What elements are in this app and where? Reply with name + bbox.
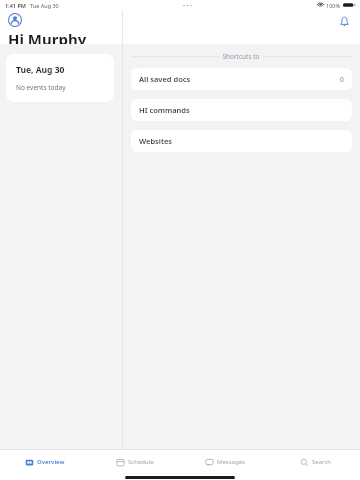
staticText: Tue, Aug 30 xyxy=(16,64,65,76)
button[interactable]: Notifications xyxy=(337,14,352,29)
button[interactable]: Profile xyxy=(8,13,22,27)
staticText: HI commands xyxy=(139,105,190,115)
staticText: 100% xyxy=(326,2,341,9)
staticText: Websites xyxy=(139,136,173,146)
staticText: Schedule xyxy=(128,458,154,466)
button[interactable]: Schedule xyxy=(90,450,180,474)
button[interactable]: HI commands xyxy=(131,99,352,121)
staticText: Messages xyxy=(217,458,245,466)
button[interactable]: Search xyxy=(270,450,360,474)
staticText: 0 xyxy=(340,75,344,84)
staticText: Shortcuts to xyxy=(219,52,263,61)
button[interactable]: Overview xyxy=(0,450,90,474)
staticText: Overview xyxy=(37,458,65,466)
button[interactable]: Messages xyxy=(180,450,270,474)
staticText: All saved docs xyxy=(139,74,191,84)
staticText: Hi Murphy xyxy=(8,29,87,44)
button[interactable]: All saved docs xyxy=(131,68,352,90)
button[interactable]: Websites xyxy=(131,130,352,152)
button[interactable]: Tue, Aug 30 xyxy=(6,54,114,102)
staticText: 1:41 PM xyxy=(5,2,26,9)
staticText: • • • xyxy=(183,2,193,9)
staticText: No events today xyxy=(16,83,66,92)
staticText: Tue Aug 30 xyxy=(30,2,59,9)
staticText: Search xyxy=(312,458,331,466)
